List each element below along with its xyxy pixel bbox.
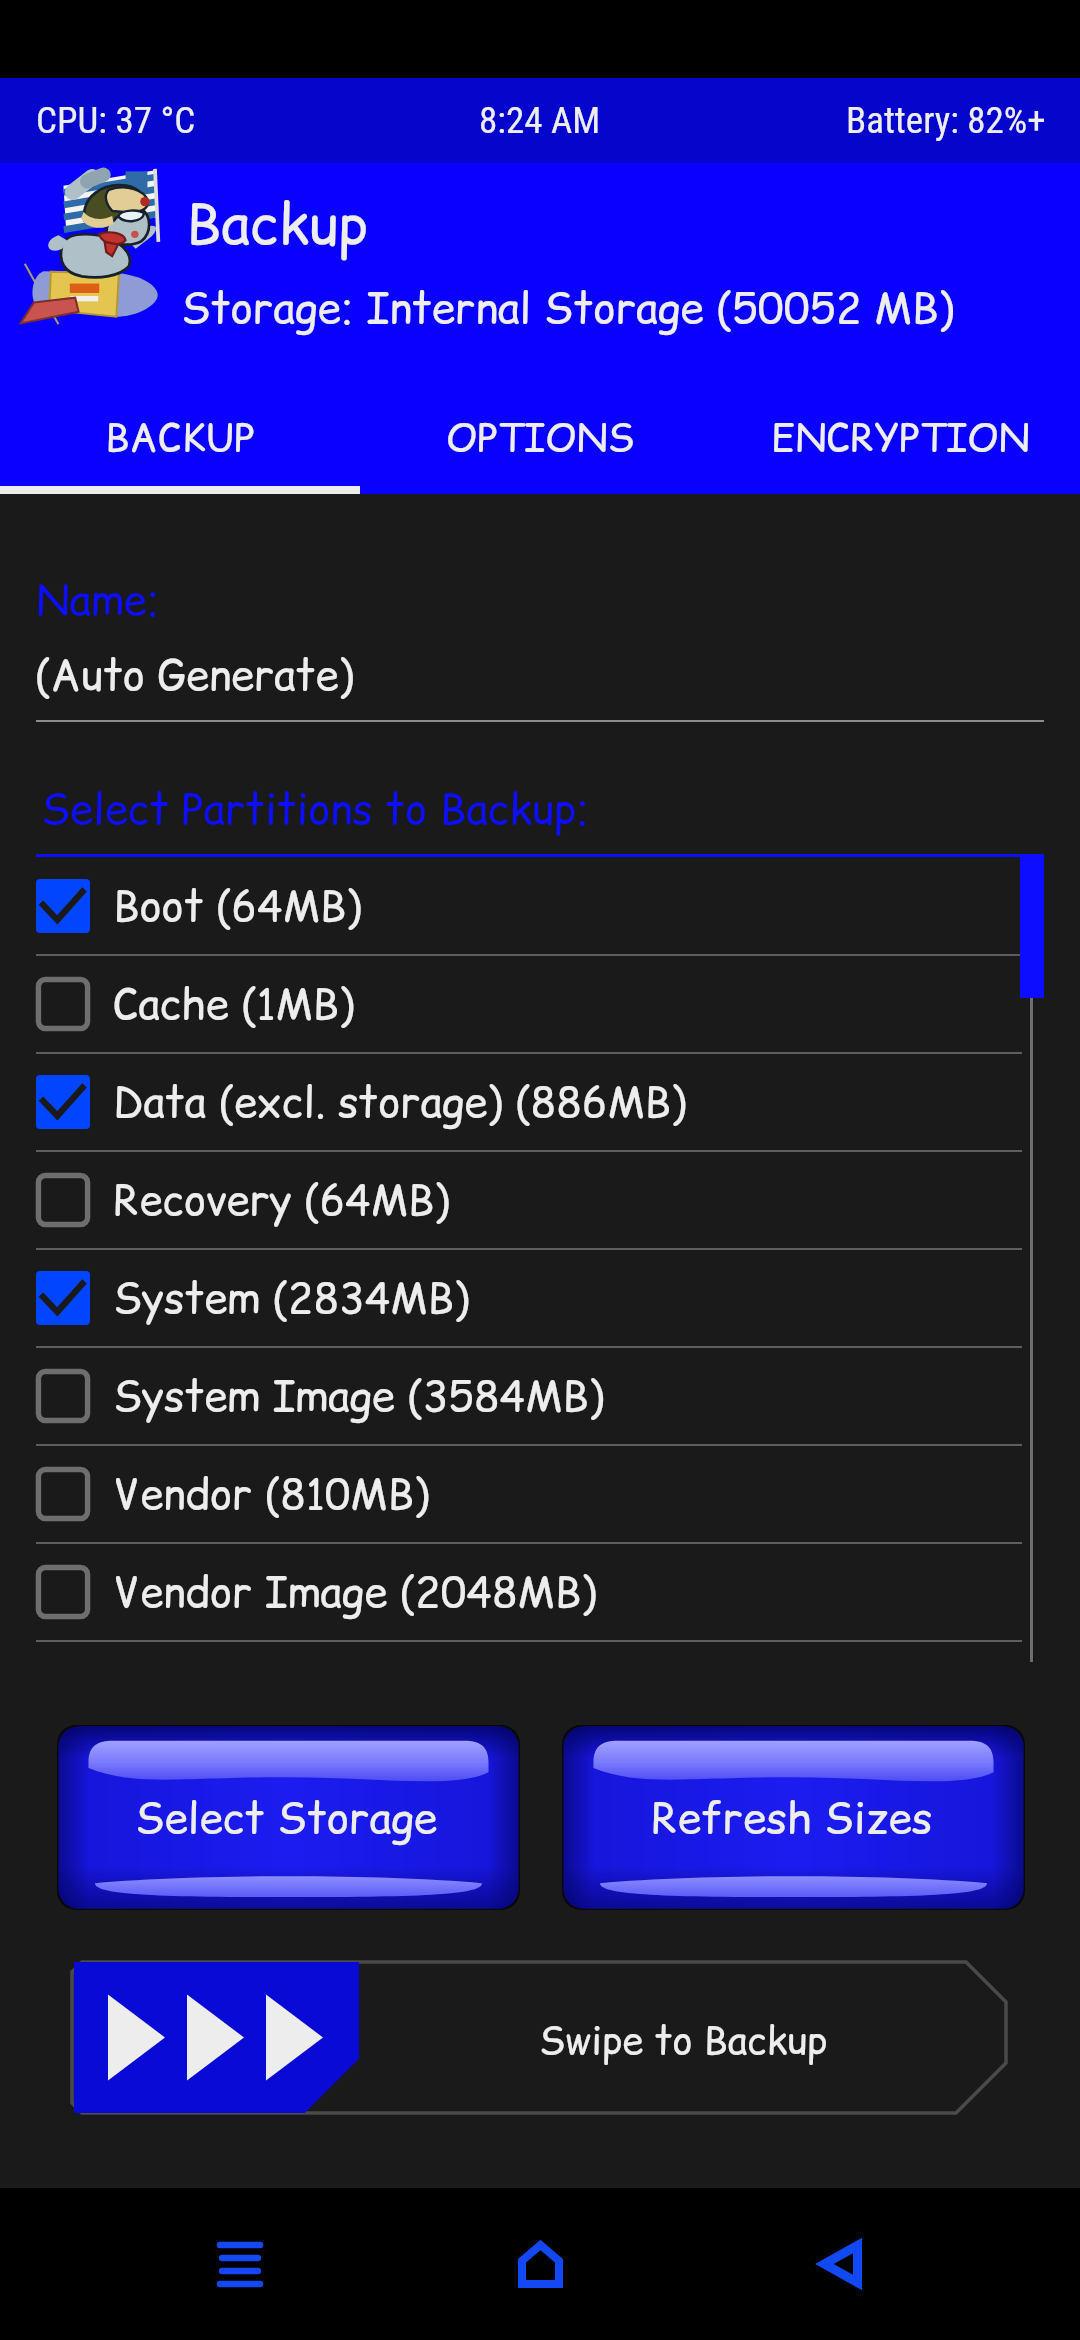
staticText: System Image (3584MB) [113, 1367, 605, 1426]
button[interactable]: Select Storage [57, 1725, 520, 1910]
button[interactable]: System (2834MB) [0, 1250, 1080, 1348]
staticText: Battery: 82%+ [846, 99, 1046, 142]
button[interactable]: Back [765, 2188, 915, 2340]
staticText: BACKUP [105, 410, 255, 464]
staticText: Vendor Image (2048MB) [113, 1563, 597, 1622]
staticText: Refresh Sizes [651, 1788, 933, 1847]
button[interactable]: BACKUP [0, 374, 360, 494]
staticText: Select Storage [135, 1788, 438, 1847]
staticText: Boot (64MB) [113, 877, 362, 936]
button[interactable]: Swipe to Backup [72, 1962, 1006, 2113]
button[interactable]: Vendor Image (2048MB) [0, 1544, 1080, 1642]
button[interactable]: Recent apps [165, 2188, 315, 2340]
button[interactable]: Data (excl. storage) (886MB) [0, 1054, 1080, 1152]
staticText: Name: [36, 571, 160, 630]
button[interactable]: Home [465, 2188, 615, 2340]
staticText: Storage: Internal Storage (50052 MB) [181, 278, 955, 337]
staticText: ENCRYPTION [771, 410, 1030, 464]
button[interactable]: Cache (1MB) [0, 956, 1080, 1054]
staticText: Select Partitions to Backup: [41, 780, 589, 839]
button[interactable]: ENCRYPTION [720, 374, 1080, 494]
staticText: OPTIONS [446, 410, 635, 464]
button[interactable]: Vendor (810MB) [0, 1446, 1080, 1544]
staticText: CPU: 37 °C [36, 99, 196, 142]
staticText: Data (excl. storage) (886MB) [113, 1073, 687, 1132]
staticText: Swipe to Backup [539, 2014, 828, 2067]
button[interactable]: System Image (3584MB) [0, 1348, 1080, 1446]
staticText: System (2834MB) [113, 1269, 470, 1328]
staticText: Vendor (810MB) [113, 1465, 430, 1524]
button[interactable]: Refresh Sizes [562, 1725, 1025, 1910]
staticText: 8:24 AM [479, 99, 601, 142]
button[interactable]: Recovery (64MB) [0, 1152, 1080, 1250]
button[interactable]: OPTIONS [360, 374, 720, 494]
staticText: (Auto Generate) [35, 646, 354, 705]
staticText: Backup [186, 185, 369, 263]
button[interactable]: Boot (64MB) [0, 858, 1080, 956]
staticText: Cache (1MB) [113, 975, 355, 1034]
staticText: Recovery (64MB) [113, 1171, 450, 1230]
